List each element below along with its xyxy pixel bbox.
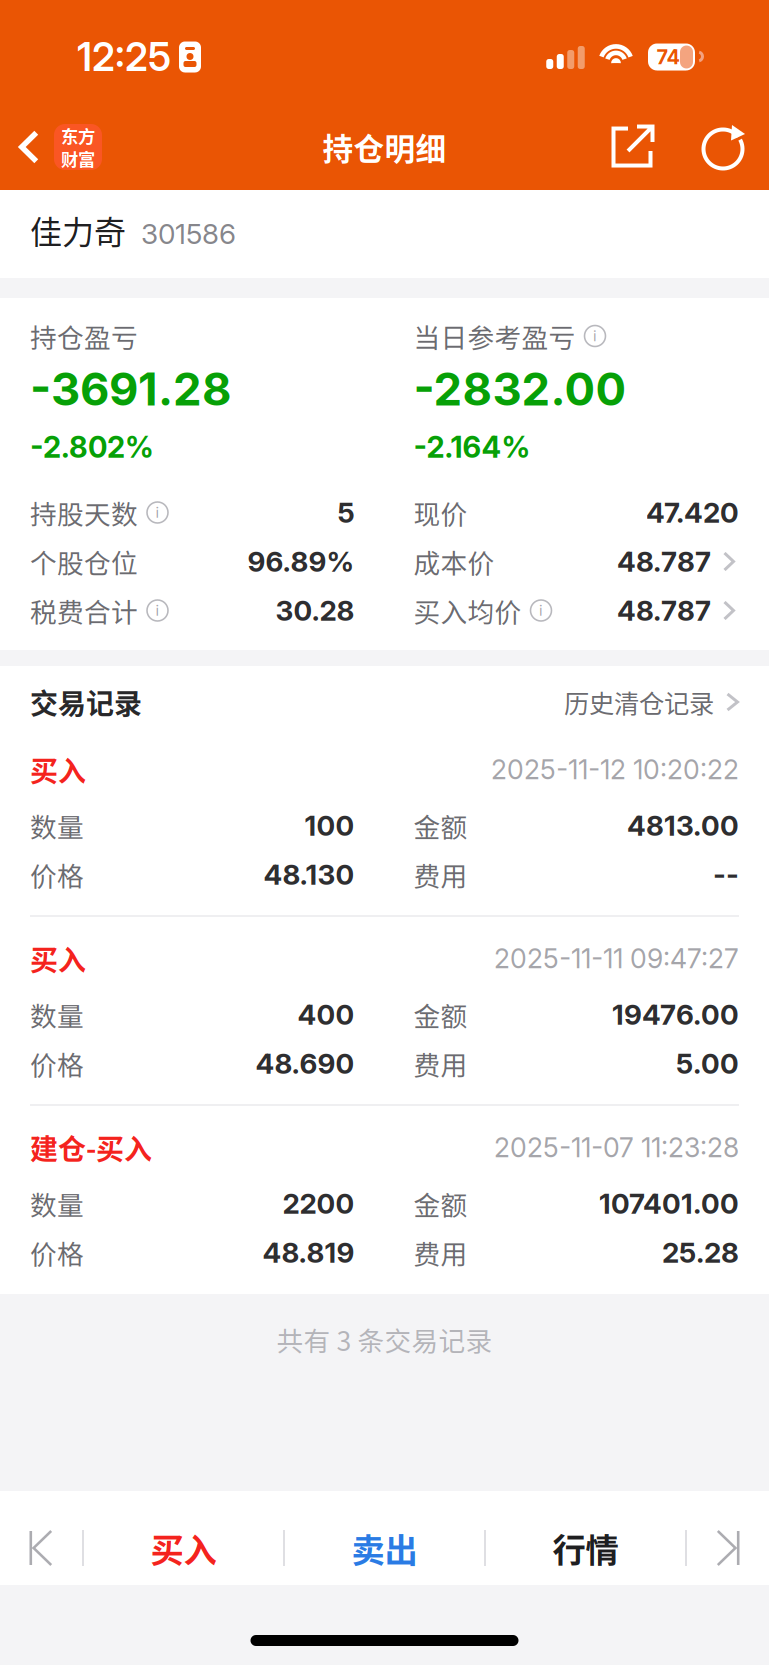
button[interactable]: 买入 [84,1491,283,1585]
staticText: 持股天数 [30,493,138,532]
staticText: -3691.28 [30,362,232,416]
staticText: 费用 [413,1233,467,1272]
staticText: -2.802% [30,429,154,465]
staticText: 买入 [30,938,86,979]
staticText: 价格 [30,855,84,894]
staticText: 5 [337,496,354,529]
staticText: 买入均价 [413,591,521,630]
staticText: 费用 [413,855,467,894]
staticText: 成本价 [413,542,494,581]
button[interactable]: 历史清仓记录 [564,676,739,728]
staticText: -2.164% [413,429,530,465]
staticText: 共有 3 条交易记录 [276,1320,492,1359]
staticText: 47.420 [646,496,739,529]
button[interactable]: 下一只股票 [687,1491,769,1585]
button[interactable]: 分享 [606,109,658,185]
staticText: 2025-11-11 09:47:27 [494,942,739,975]
staticText: 25.28 [662,1236,739,1269]
staticText: 历史清仓记录 [564,684,714,720]
staticText: 5.00 [676,1047,739,1080]
staticText: 30.28 [275,594,354,627]
button[interactable]: 上一只股票 [0,1491,82,1585]
staticText: 48.690 [255,1047,354,1080]
staticText: 持仓明细 [322,125,446,169]
staticText: 当日参考盈亏 [413,317,575,355]
staticText: 100 [304,809,354,842]
staticText: 48.787 [617,594,711,627]
staticText: 现价 [413,493,467,532]
staticText: 2025-11-12 10:20:22 [491,753,739,786]
staticText: 12:25 [77,34,171,80]
staticText: 财富 [61,146,95,171]
button[interactable]: 卖出 [285,1491,484,1585]
staticText: 买入 [30,749,86,790]
staticText: 交易记录 [30,682,142,722]
staticText: 金额 [413,995,467,1034]
staticText: -2832.00 [413,362,626,416]
staticText: 48.787 [617,545,711,578]
staticText: 建仓-买入 [30,1127,152,1168]
staticText: 48.130 [263,858,354,891]
staticText: 96.89% [247,545,354,578]
staticText: 48.819 [262,1236,354,1269]
button[interactable]: 返回东方财富 [0,107,114,187]
staticText: 行情 [552,1524,618,1572]
staticText: 持仓盈亏 [30,317,138,355]
staticText: 2025-11-07 11:23:28 [494,1131,739,1164]
staticText: 数量 [30,1184,84,1223]
staticText: 数量 [30,995,84,1034]
staticText: i [155,504,159,521]
staticText: 费用 [413,1044,467,1083]
staticText: i [593,327,597,345]
staticText: 买入 [150,1524,216,1572]
staticText: 东方 [61,123,95,148]
staticText: 佳力奇 [30,207,126,253]
staticText: i [155,602,159,619]
staticText: 107401.00 [599,1187,739,1220]
staticText: 金额 [413,1184,467,1223]
staticText: -- [713,858,739,891]
staticText: 税费合计 [30,591,138,630]
staticText: i [539,602,543,619]
staticText: 19476.00 [612,998,739,1031]
button[interactable]: 行情 [486,1491,685,1585]
staticText: 400 [297,998,354,1031]
staticText: 价格 [30,1233,84,1272]
staticText: 个股仓位 [30,542,138,581]
staticText: 4813.00 [627,809,739,842]
button[interactable]: 刷新 [697,109,751,185]
staticText: 301586 [141,217,236,251]
staticText: 金额 [413,806,467,845]
staticText: 价格 [30,1044,84,1083]
staticText: 74 [656,45,680,69]
staticText: 2200 [282,1187,354,1220]
staticText: 数量 [30,806,84,845]
staticText: 卖出 [351,1524,417,1572]
